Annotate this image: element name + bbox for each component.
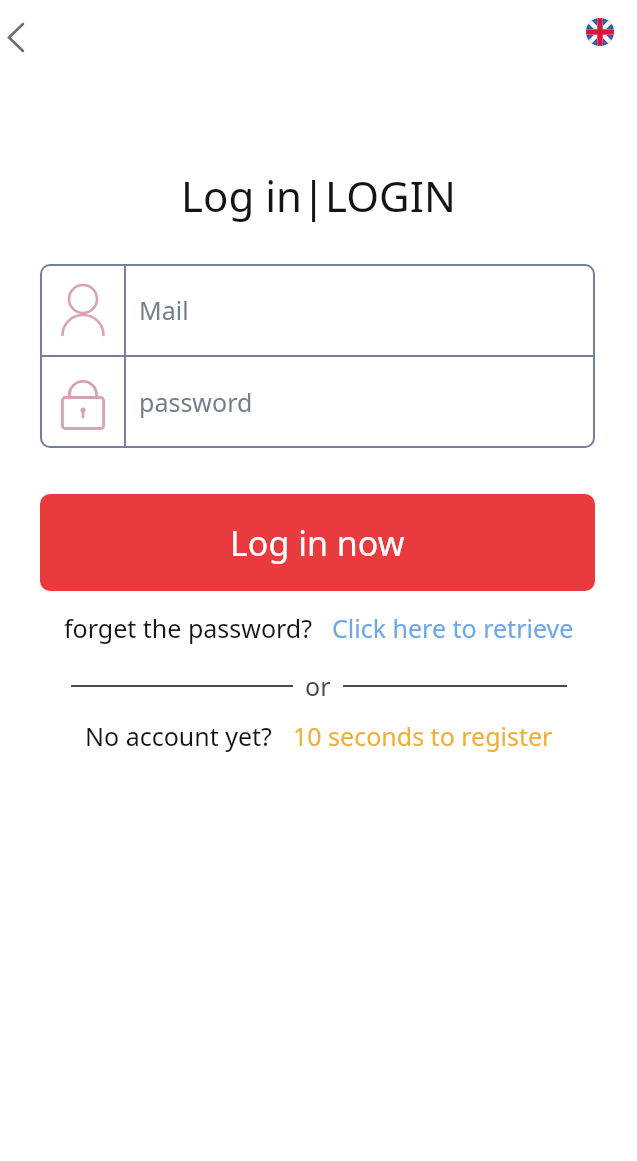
button[interactable] xyxy=(0,15,31,60)
button[interactable] xyxy=(586,18,614,46)
button[interactable]: Log in now xyxy=(40,494,595,591)
staticText: No account yet? xyxy=(85,719,272,753)
button[interactable]: password xyxy=(126,356,595,447)
staticText: Click here to retrieve xyxy=(332,611,574,645)
staticText: Log in|LOGIN xyxy=(181,167,456,223)
staticText: forget the password? xyxy=(64,611,313,645)
staticText: Mail xyxy=(139,293,189,327)
staticText: or xyxy=(305,669,331,703)
button[interactable]: Mail xyxy=(126,264,595,355)
button[interactable]: forget the password? xyxy=(0,611,637,645)
button[interactable]: No account yet? xyxy=(0,719,637,753)
staticText: password xyxy=(139,385,253,419)
staticText: Log in now xyxy=(230,520,405,566)
staticText: 10 seconds to register xyxy=(293,719,553,753)
